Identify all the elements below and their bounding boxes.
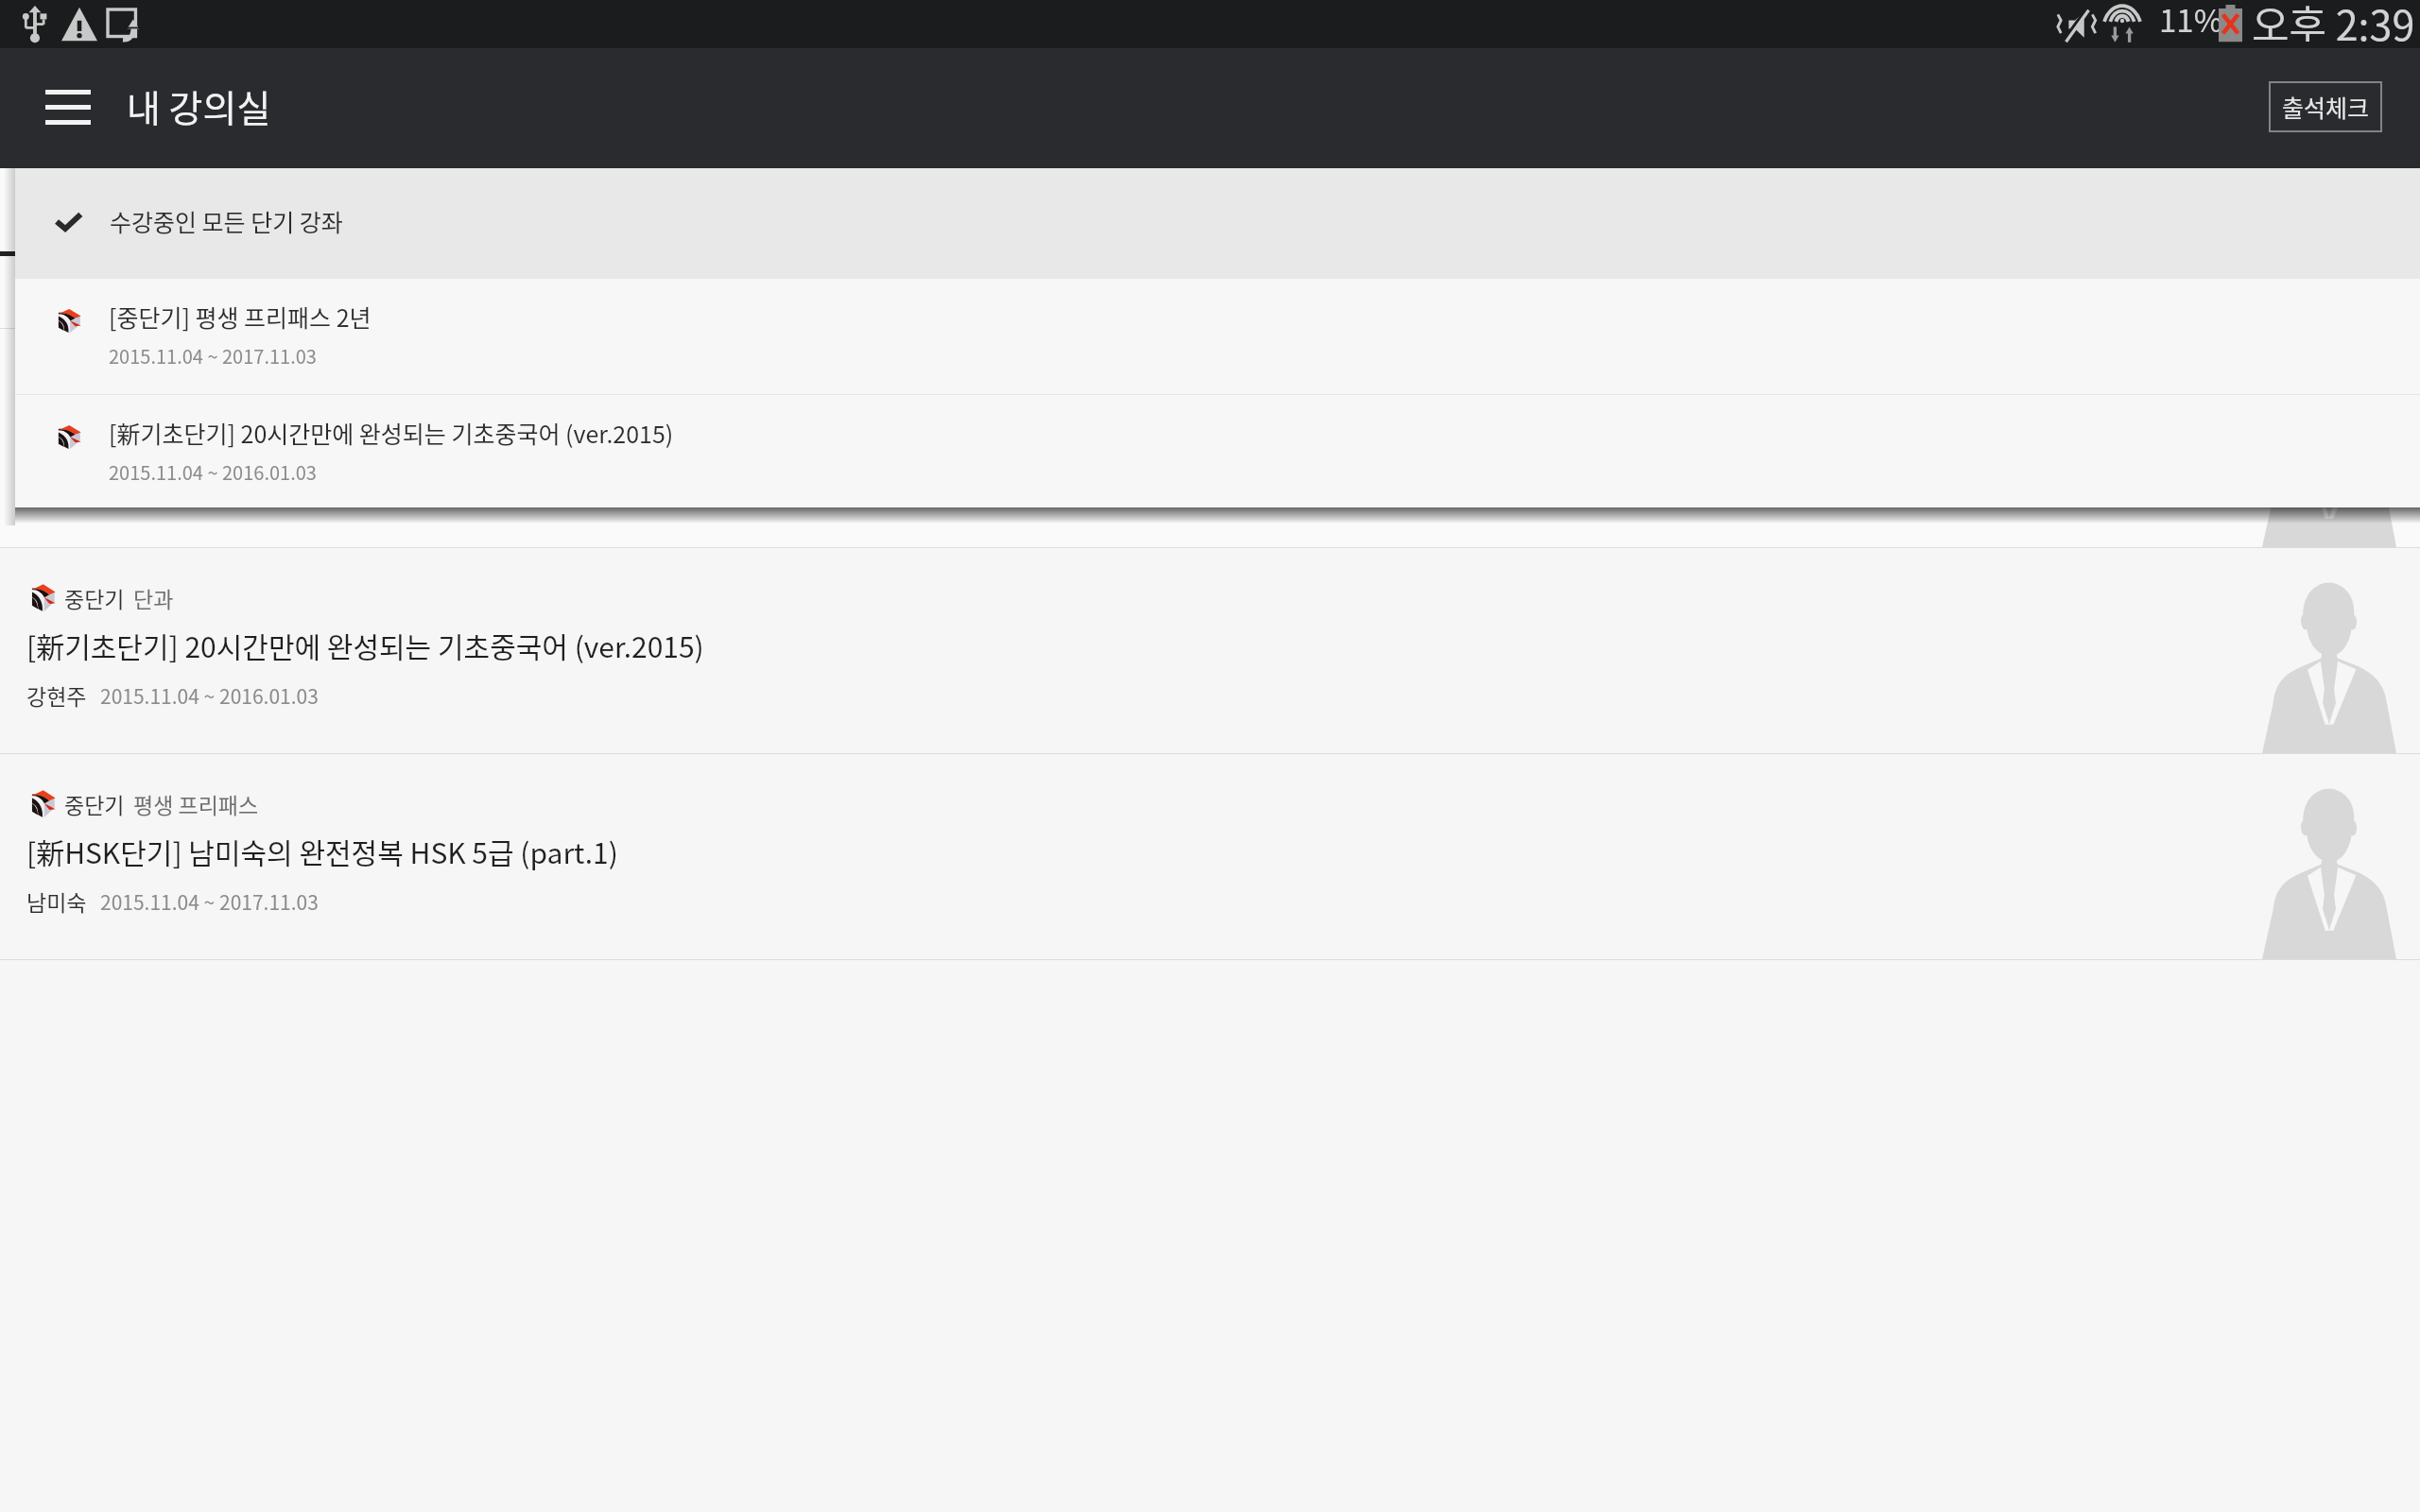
button[interactable]: 출석체크 xyxy=(2269,81,2382,132)
staticText: [新기초단기] 20시간만에 완성되는 기초중국어 (ver.2015) xyxy=(109,416,674,450)
staticText: 남미숙 xyxy=(26,885,87,917)
staticText: 2015.11.04 ~ 2016.01.03 xyxy=(109,458,317,486)
staticText: 2015.11.04 ~ 2017.11.03 xyxy=(100,887,319,916)
staticText: 중단기 xyxy=(64,582,125,613)
staticText: 2015.11.04 ~ 2016.01.03 xyxy=(100,681,319,710)
staticText: [新HSK단기] 남미숙의 완전정복 HSK 5급 (part.1) xyxy=(26,831,618,871)
staticText: 출석체크 xyxy=(2282,90,2370,124)
staticText: 수강중인 모든 단기 강좌 xyxy=(110,204,343,238)
staticText: 강현주 xyxy=(26,679,87,711)
button[interactable]: Open navigation menu xyxy=(32,61,104,152)
button[interactable]: [중단기] 평생 프리패스 2년 xyxy=(15,279,2420,394)
staticText: 오후 2:39 xyxy=(2252,0,2415,42)
staticText: 2015.11.04 ~ 2017.11.03 xyxy=(109,342,317,369)
staticText: 평생 프리패스 xyxy=(133,788,259,819)
staticText: [新기초단기] 20시간만에 완성되는 기초중국어 (ver.2015) xyxy=(26,625,704,665)
button[interactable]: [新기초단기] 20시간만에 완성되는 기초중국어 (ver.2015) xyxy=(15,395,2420,507)
staticText: 중단기 xyxy=(64,788,125,819)
staticText: 내 강의실 xyxy=(127,79,271,132)
staticText: 단과 xyxy=(133,582,174,613)
button[interactable]: 중단기 xyxy=(0,548,2420,753)
button[interactable]: 중단기 xyxy=(0,754,2420,959)
staticText: 11% xyxy=(2159,0,2223,42)
button[interactable]: 수강중인 모든 단기 강좌 xyxy=(15,168,2420,279)
staticText: [중단기] 평생 프리패스 2년 xyxy=(109,300,372,334)
